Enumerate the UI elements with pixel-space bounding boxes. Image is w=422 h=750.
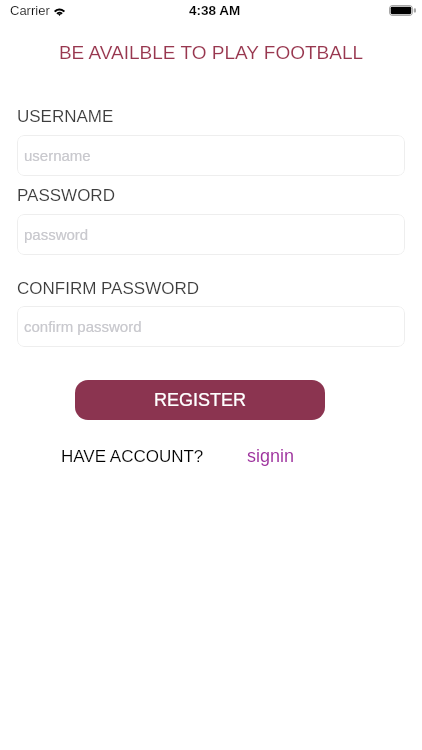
staticText: confirm password [24, 318, 142, 335]
button[interactable]: REGISTER [75, 380, 325, 420]
other: Battery full [389, 5, 416, 16]
button[interactable]: password [17, 214, 405, 255]
staticText: signin [247, 446, 295, 466]
other: Wi-Fi signal [52, 5, 67, 16]
button[interactable]: confirm password [17, 306, 405, 347]
staticText: USERNAME [17, 107, 114, 126]
staticText: password [24, 226, 89, 243]
staticText: BE AVAILBLE TO PLAY FOOTBALL [0, 42, 422, 63]
staticText: Carrier [10, 3, 50, 18]
staticText: CONFIRM PASSWORD [17, 279, 199, 298]
staticText: username [24, 147, 91, 164]
staticText: HAVE ACCOUNT? [61, 447, 204, 466]
button[interactable]: username [17, 135, 405, 176]
staticText: PASSWORD [17, 186, 115, 205]
staticText: REGISTER [154, 390, 247, 410]
staticText: 4:38 AM [189, 3, 241, 18]
button[interactable]: signin [247, 446, 295, 466]
